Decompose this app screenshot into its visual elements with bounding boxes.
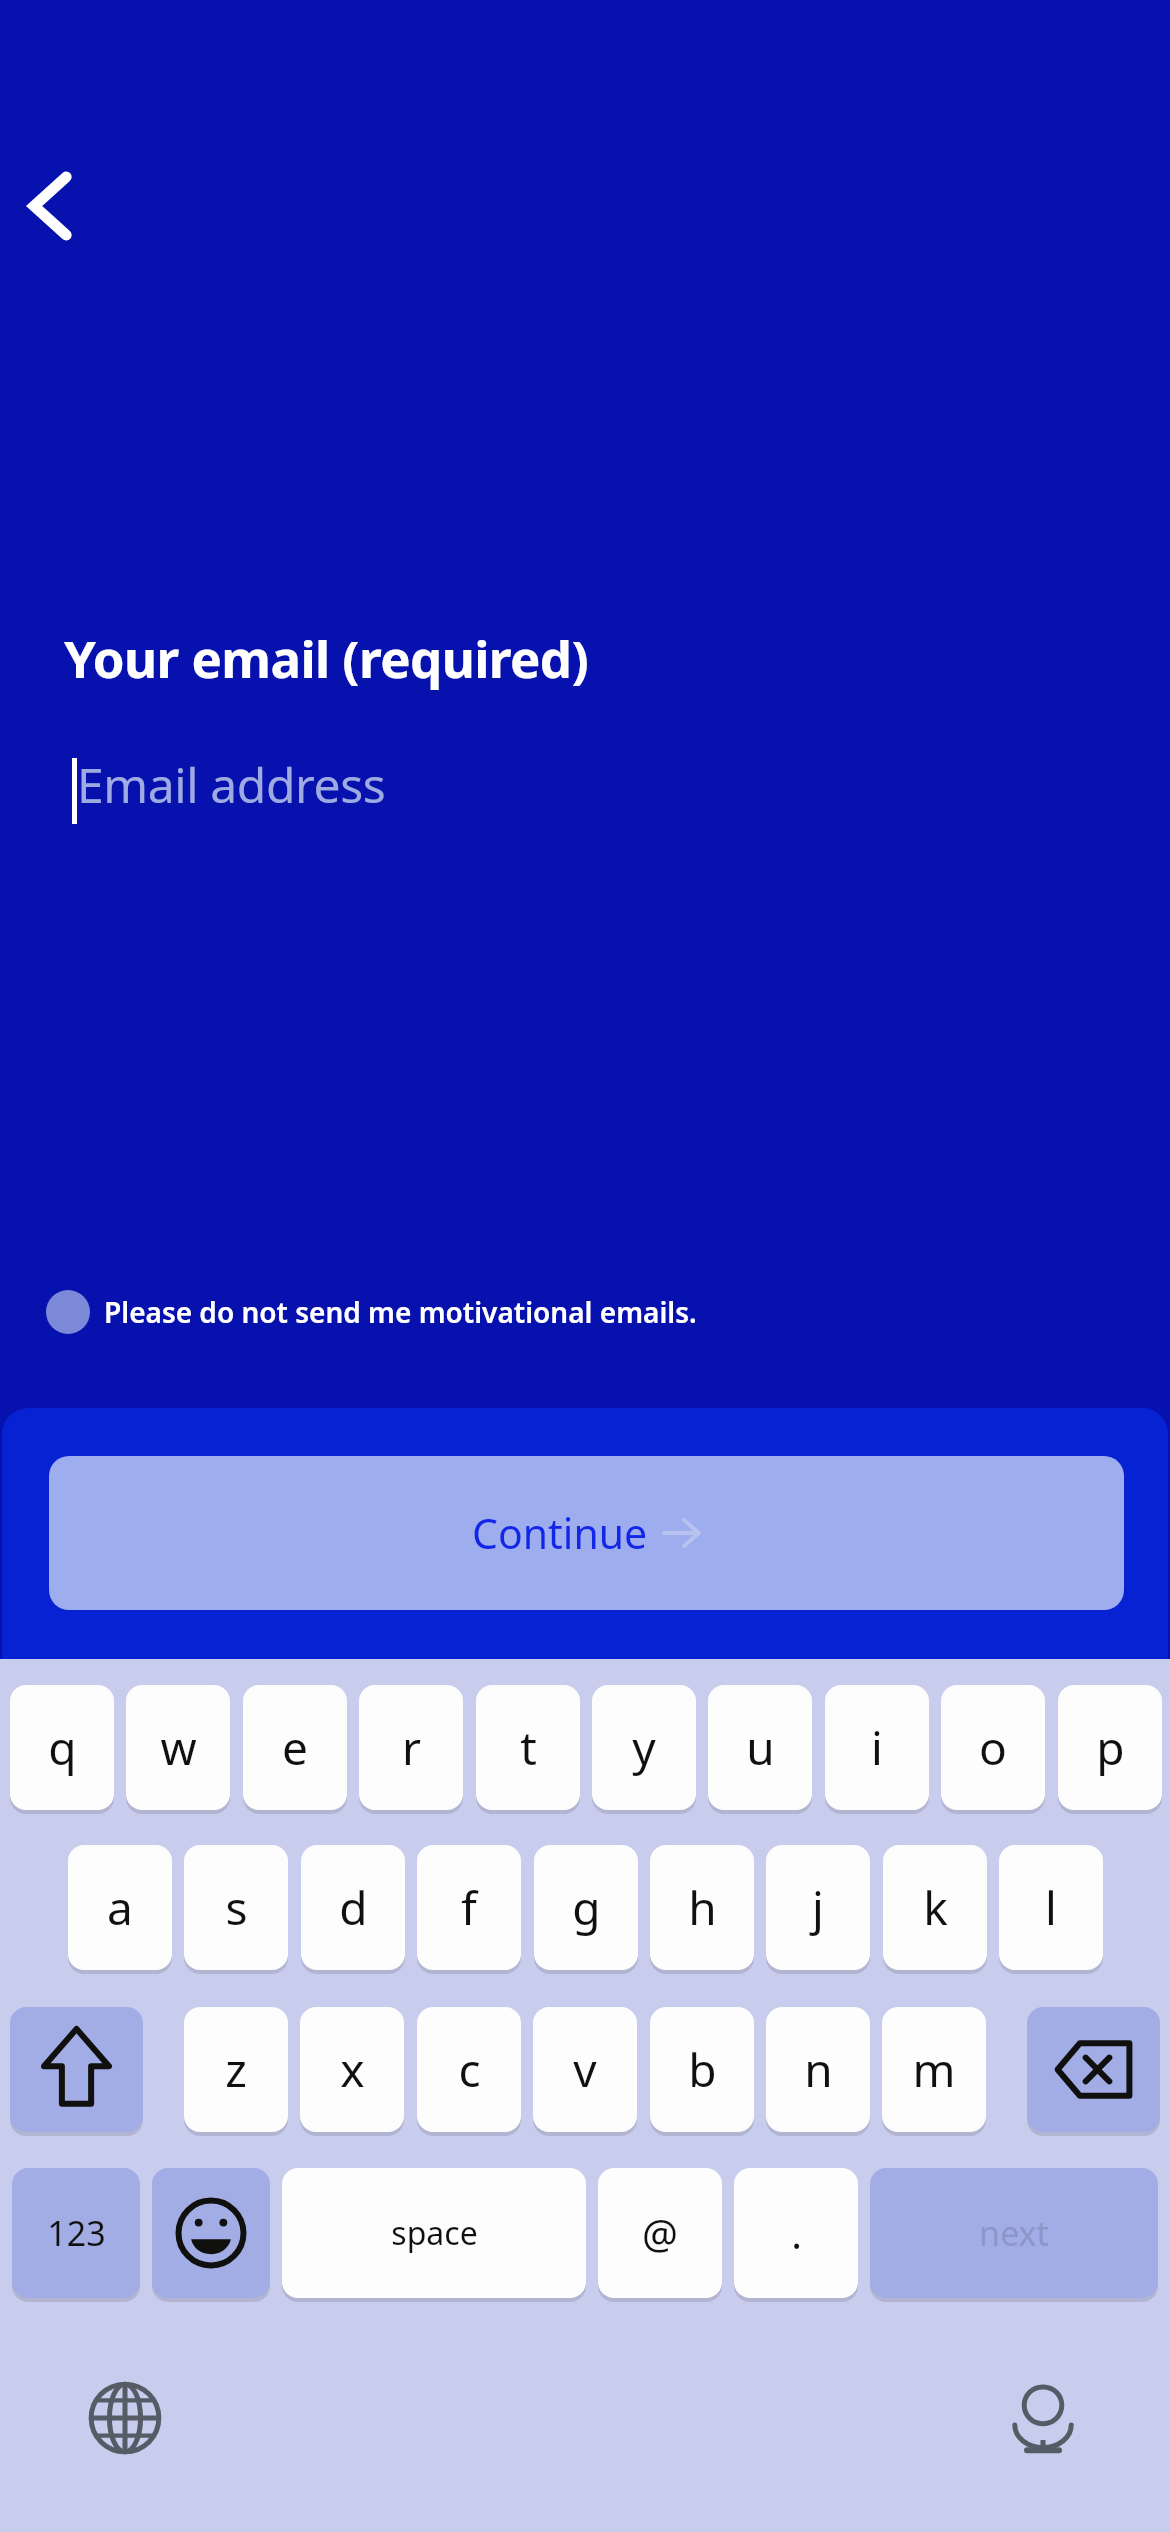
button[interactable]: d xyxy=(301,1845,405,1970)
button[interactable]: c xyxy=(417,2007,521,2132)
staticText: o xyxy=(979,1716,1007,1779)
button[interactable]: i xyxy=(825,1685,929,1810)
staticText: g xyxy=(572,1876,601,1939)
staticText: l xyxy=(1045,1876,1057,1939)
button[interactable]: Emoji xyxy=(152,2168,270,2298)
staticText: space xyxy=(391,2211,478,2255)
staticText: m xyxy=(912,2038,956,2101)
button[interactable]: h xyxy=(650,1845,754,1970)
button[interactable]: next xyxy=(870,2168,1158,2298)
button[interactable]: Change keyboard language xyxy=(78,2371,172,2465)
button[interactable]: Shift xyxy=(10,2007,143,2132)
button[interactable]: s xyxy=(184,1845,288,1970)
button[interactable]: e xyxy=(243,1685,347,1810)
staticText: n xyxy=(804,2038,833,2101)
staticText: Continue xyxy=(472,1505,648,1561)
button[interactable]: n xyxy=(766,2007,870,2132)
button[interactable]: t xyxy=(476,1685,580,1810)
button[interactable]: v xyxy=(533,2007,637,2132)
button[interactable]: Back xyxy=(6,158,102,254)
button[interactable]: Voice input xyxy=(996,2371,1090,2465)
staticText: e xyxy=(282,1716,308,1779)
staticText: r xyxy=(402,1716,421,1779)
button[interactable]: o xyxy=(941,1685,1045,1810)
staticText: u xyxy=(746,1716,775,1779)
staticText: c xyxy=(458,2038,481,2101)
button[interactable]: Backspace xyxy=(1027,2007,1160,2132)
staticText: i xyxy=(871,1716,883,1779)
button[interactable]: Continue xyxy=(49,1456,1124,1610)
staticText: next xyxy=(979,2210,1049,2256)
button[interactable]: b xyxy=(650,2007,754,2132)
staticText: v xyxy=(573,2038,597,2101)
staticText: y xyxy=(632,1716,656,1779)
staticText: p xyxy=(1096,1716,1125,1779)
button[interactable]: k xyxy=(883,1845,987,1970)
button[interactable]: r xyxy=(359,1685,463,1810)
button[interactable]: g xyxy=(534,1845,638,1970)
button[interactable]: j xyxy=(766,1845,870,1970)
staticText: b xyxy=(688,2038,717,2101)
staticText: s xyxy=(225,1876,248,1939)
button[interactable]: x xyxy=(300,2007,404,2132)
button[interactable]: w xyxy=(126,1685,230,1810)
button[interactable]: q xyxy=(10,1685,114,1810)
button[interactable]: @ xyxy=(598,2168,722,2298)
staticText: Email address xyxy=(77,752,386,817)
staticText: f xyxy=(461,1876,477,1939)
button[interactable]: Email address xyxy=(64,744,1106,840)
button[interactable]: p xyxy=(1058,1685,1162,1810)
button[interactable]: . xyxy=(734,2168,858,2298)
button[interactable]: a xyxy=(68,1845,172,1970)
staticText: . xyxy=(791,2206,802,2260)
staticText: 123 xyxy=(47,2210,106,2256)
staticText: @ xyxy=(642,2206,678,2260)
staticText: k xyxy=(923,1876,948,1939)
button[interactable]: u xyxy=(708,1685,812,1810)
button[interactable]: Please do not send me motivational email… xyxy=(46,1276,1046,1348)
staticText: Please do not send me motivational email… xyxy=(104,1293,697,1331)
staticText: x xyxy=(340,2038,365,2101)
staticText: t xyxy=(520,1716,537,1779)
staticText: a xyxy=(107,1876,133,1939)
button[interactable]: l xyxy=(999,1845,1103,1970)
button[interactable]: y xyxy=(592,1685,696,1810)
button[interactable]: m xyxy=(882,2007,986,2132)
button[interactable]: z xyxy=(184,2007,288,2132)
staticText: Your email (required) xyxy=(64,623,589,692)
staticText: z xyxy=(225,2038,247,2101)
staticText: j xyxy=(812,1876,824,1939)
button[interactable]: 123 xyxy=(12,2168,140,2298)
staticText: d xyxy=(339,1876,368,1939)
staticText: w xyxy=(160,1716,197,1779)
button[interactable]: f xyxy=(417,1845,521,1970)
staticText: h xyxy=(688,1876,717,1939)
button[interactable]: space xyxy=(282,2168,586,2298)
staticText: q xyxy=(48,1716,77,1779)
